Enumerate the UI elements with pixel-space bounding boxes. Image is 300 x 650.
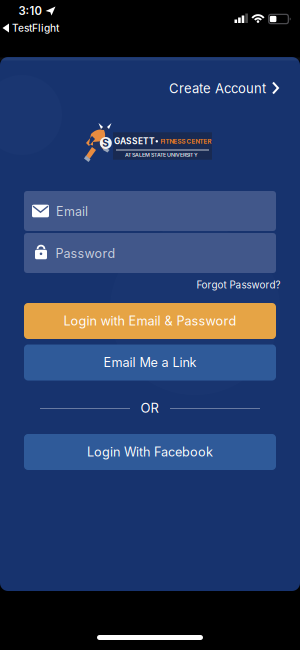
staticText: FITNESS CENTER xyxy=(160,138,211,145)
staticText: Forgot Password? xyxy=(196,279,280,291)
staticText: OR xyxy=(140,400,158,416)
staticText: 3:10 xyxy=(18,4,41,18)
staticText: Email xyxy=(56,204,88,219)
staticText: AT SALEM STATE UNIVERSITY xyxy=(125,152,198,158)
staticText: Create Account xyxy=(169,81,266,96)
staticText: GASSETT xyxy=(114,136,155,146)
staticText: Email Me a Link xyxy=(103,355,196,370)
button[interactable]: Email xyxy=(24,191,276,231)
button[interactable]: Password xyxy=(24,233,276,273)
staticText: Password xyxy=(55,246,115,261)
staticText: Login With Facebook xyxy=(87,444,213,460)
button[interactable]: Forgot Password? xyxy=(196,279,280,291)
button[interactable]: Email Me a Link xyxy=(24,344,276,380)
button[interactable]: Create Account xyxy=(169,81,280,96)
staticText: TestFlight xyxy=(12,22,59,34)
staticText: S xyxy=(102,137,109,149)
staticText: Login with Email & Password xyxy=(63,313,236,329)
button[interactable]: Login With Facebook xyxy=(24,434,276,470)
button[interactable]: Login with Email & Password xyxy=(24,303,276,339)
